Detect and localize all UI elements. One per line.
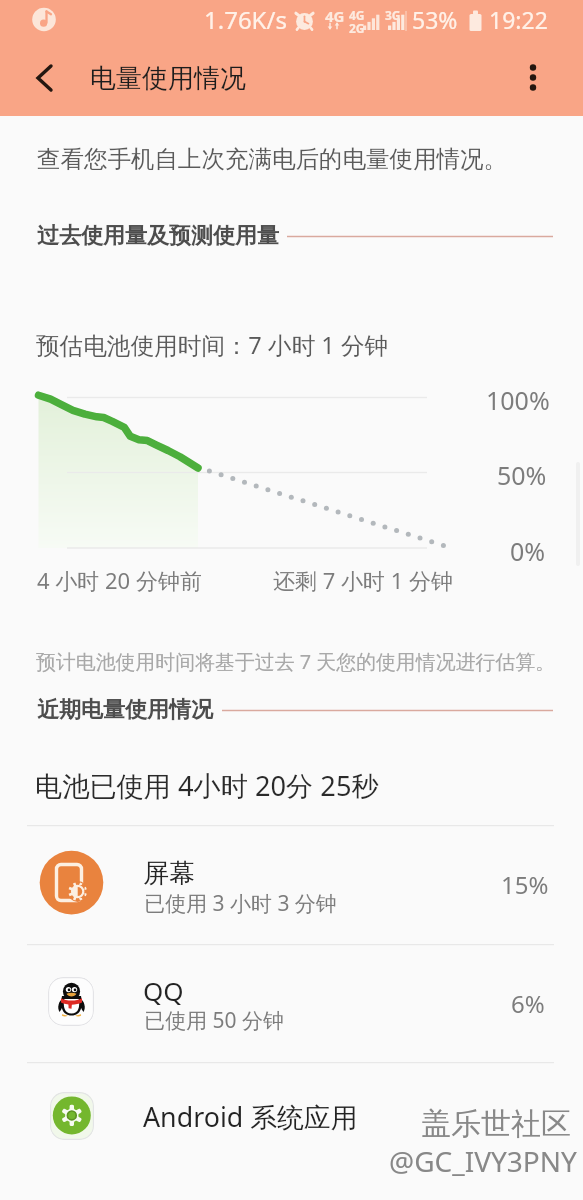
staticText: 100%: [486, 383, 550, 417]
staticText: 预计电池使用时间将基于过去 7 天您的使用情况进行估算。: [36, 648, 555, 675]
staticText: 已使用 50 分钟: [144, 1006, 284, 1035]
staticText: @GC_IVY3PNY: [389, 1142, 577, 1180]
staticText: Android 系统应用: [143, 1098, 358, 1135]
staticText: 电池已使用 4小时 20分 25秒: [35, 767, 379, 804]
staticText: 19:22: [489, 4, 548, 35]
staticText: 查看您手机自上次充满电后的电量使用情况。: [37, 144, 507, 174]
button[interactable]: QQ: [0, 944, 583, 1062]
button[interactable]: Back: [22, 55, 68, 101]
staticText: 4G: [325, 6, 345, 26]
staticText: 盖乐世社区: [421, 1105, 571, 1143]
staticText: 过去使用量及预测使用量: [37, 222, 279, 250]
staticText: 电量使用情况: [90, 62, 246, 95]
staticText: 还剩 7 小时 1 分钟: [273, 565, 454, 595]
staticText: 屏幕: [143, 857, 195, 890]
staticText: 3G: [385, 7, 401, 23]
button[interactable]: Android 系统应用: [0, 1062, 583, 1200]
staticText: 50%: [497, 458, 547, 492]
staticText: 已使用 3 小时 3 分钟: [144, 889, 337, 918]
staticText: 2G: [349, 20, 365, 36]
staticText: 4 小时 20 分钟前: [37, 565, 202, 595]
staticText: 53%: [412, 4, 458, 35]
staticText: 4G: [349, 7, 365, 23]
staticText: 预估电池使用时间：7 小时 1 分钟: [36, 329, 389, 361]
staticText: 1.76K/s: [204, 3, 287, 36]
staticText: 0%: [510, 534, 546, 568]
staticText: 6%: [511, 987, 545, 1020]
staticText: QQ: [143, 973, 184, 1008]
staticText: 15%: [501, 868, 549, 901]
staticText: 近期电量使用情况: [37, 696, 213, 724]
button[interactable]: More options: [512, 55, 556, 99]
button[interactable]: 屏幕: [0, 825, 583, 944]
